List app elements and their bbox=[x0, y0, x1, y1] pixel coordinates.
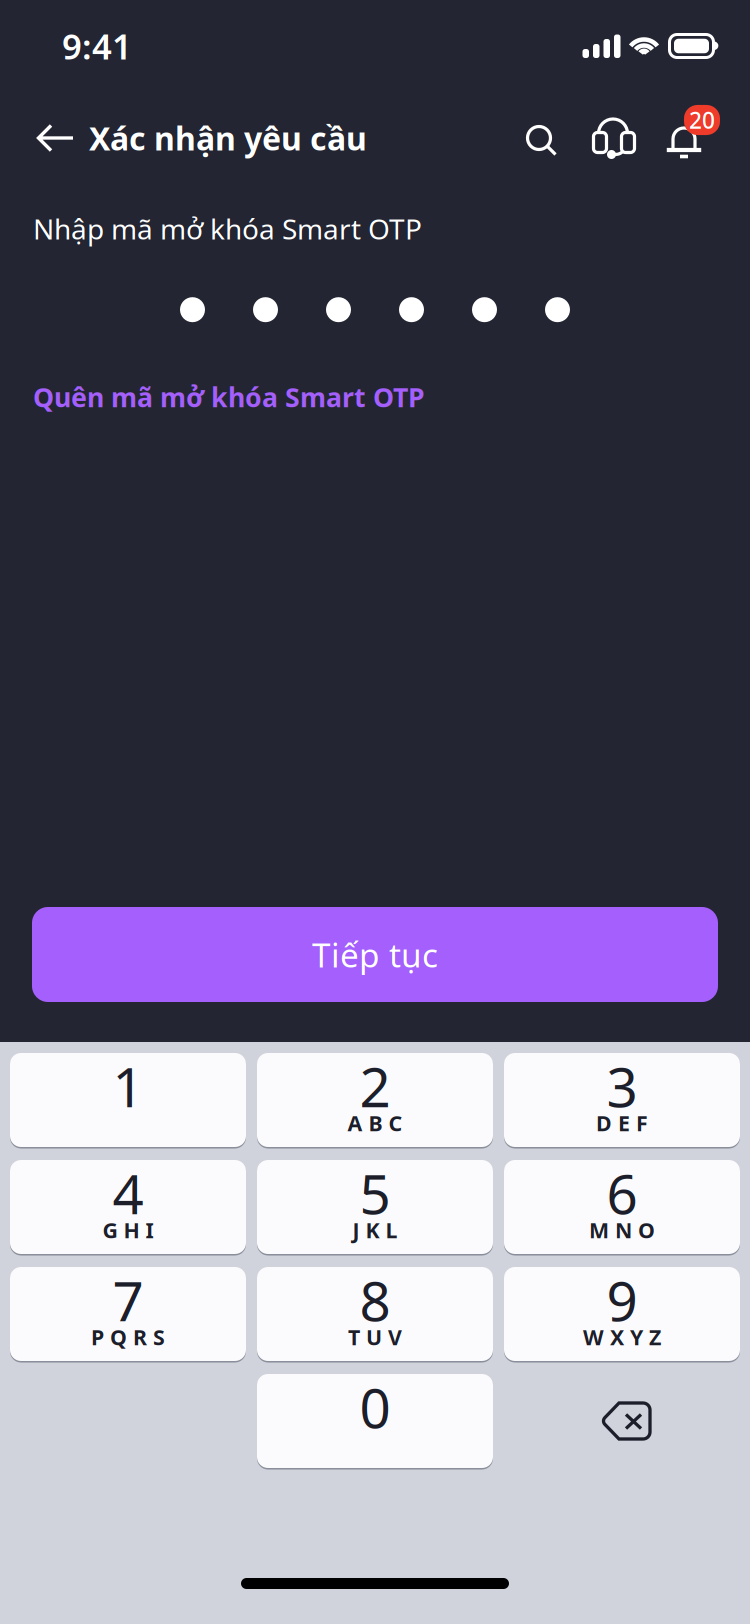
button[interactable]: 1 bbox=[10, 1053, 246, 1147]
staticText: A B C bbox=[347, 1109, 402, 1137]
button[interactable]: 7 bbox=[10, 1267, 246, 1361]
staticText: 6 bbox=[606, 1157, 637, 1229]
staticText: 9 bbox=[606, 1264, 637, 1336]
button[interactable]: Notifications bbox=[650, 106, 718, 170]
staticText: J K L bbox=[352, 1216, 397, 1244]
button[interactable]: 9 bbox=[504, 1267, 740, 1361]
staticText: Quên mã mở khóa Smart OTP bbox=[33, 379, 425, 415]
staticText: M N O bbox=[589, 1216, 655, 1244]
staticText: D E F bbox=[596, 1109, 648, 1137]
button[interactable]: 0 bbox=[257, 1374, 493, 1468]
button[interactable]: Back bbox=[23, 103, 89, 173]
staticText: 3 bbox=[606, 1050, 637, 1122]
staticText: T U V bbox=[348, 1323, 402, 1351]
staticText: 1 bbox=[112, 1050, 143, 1122]
staticText: 5 bbox=[359, 1157, 390, 1229]
staticText: G H I bbox=[102, 1216, 153, 1244]
button[interactable]: Customer support bbox=[578, 106, 650, 170]
button[interactable]: 6 bbox=[504, 1160, 740, 1254]
staticText: Nhập mã mở khóa Smart OTP bbox=[33, 210, 422, 247]
staticText: 9:41 bbox=[62, 23, 132, 69]
staticText: 2 bbox=[359, 1050, 390, 1122]
button[interactable]: 3 bbox=[504, 1053, 740, 1147]
button[interactable]: 8 bbox=[257, 1267, 493, 1361]
staticText: 4 bbox=[112, 1157, 143, 1229]
staticText: 8 bbox=[359, 1264, 390, 1336]
button[interactable]: 5 bbox=[257, 1160, 493, 1254]
button[interactable]: 4 bbox=[10, 1160, 246, 1254]
button[interactable]: Delete bbox=[504, 1374, 740, 1468]
button[interactable]: Tiếp tục bbox=[32, 907, 718, 1002]
staticText: 20 bbox=[689, 105, 715, 135]
staticText: Tiếp tục bbox=[312, 932, 438, 977]
staticText: 7 bbox=[112, 1264, 143, 1336]
button[interactable]: Quên mã mở khóa Smart OTP bbox=[33, 379, 425, 415]
staticText: W X Y Z bbox=[583, 1323, 661, 1351]
button[interactable]: 2 bbox=[257, 1053, 493, 1147]
staticText: 0 bbox=[359, 1371, 390, 1443]
button[interactable]: Search bbox=[506, 106, 578, 170]
staticText: P Q R S bbox=[91, 1323, 165, 1351]
staticText: Xác nhận yêu cầu bbox=[89, 117, 367, 159]
